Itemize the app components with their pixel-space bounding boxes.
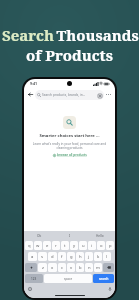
staticText: o: [100, 243, 103, 249]
button[interactable]: x: [48, 263, 57, 272]
button[interactable]: More options: [105, 91, 112, 98]
button[interactable]: a: [28, 252, 37, 261]
staticText: search: [99, 277, 109, 281]
button[interactable]: r: [52, 241, 60, 250]
staticText: e: [46, 243, 49, 249]
button[interactable]: browse all products: [53, 153, 87, 157]
staticText: browse all products: [57, 153, 87, 157]
button[interactable]: search: [93, 274, 114, 283]
staticText: q: [28, 243, 31, 249]
staticText: Search: [0, 25, 56, 45]
button[interactable]: f: [58, 252, 66, 261]
staticText: m: [96, 265, 100, 271]
button[interactable]: Emoji: [27, 286, 32, 291]
staticText: Search products, brands, in…: [42, 93, 97, 97]
button[interactable]: u: [79, 241, 87, 250]
button[interactable]: g: [67, 252, 75, 261]
button[interactable]: e: [43, 241, 51, 250]
button[interactable]: z: [38, 263, 47, 272]
staticText: s: [41, 254, 44, 260]
button[interactable]: d: [48, 252, 57, 261]
button[interactable]: b: [76, 263, 84, 272]
button[interactable]: 123: [25, 274, 43, 283]
staticText: h: [79, 254, 82, 260]
staticText: n: [88, 265, 91, 271]
staticText: g: [70, 254, 73, 260]
staticText: x: [51, 265, 54, 271]
button[interactable]: w: [34, 241, 42, 250]
button[interactable]: l: [103, 252, 111, 261]
staticText: p: [109, 243, 112, 249]
staticText: space: [64, 277, 73, 281]
button[interactable]: I: [55, 231, 85, 240]
staticText: u: [82, 243, 85, 249]
button[interactable]: Search products, brands, in…: [35, 90, 104, 100]
button[interactable]: Voice input: [107, 286, 112, 291]
button[interactable]: v: [67, 263, 75, 272]
staticText: j: [88, 254, 90, 260]
staticText: I: [69, 234, 71, 238]
staticText: d: [51, 254, 54, 260]
staticText: Hello: [96, 234, 104, 238]
button[interactable]: Shift: [25, 263, 37, 272]
staticText: k: [97, 254, 100, 260]
button[interactable]: k: [94, 252, 102, 261]
staticText: Learn what's really in your food, person…: [31, 142, 108, 150]
staticText: Smarter choices start here …: [39, 133, 100, 139]
button[interactable]: q: [25, 241, 33, 250]
staticText: c: [61, 265, 64, 271]
button[interactable]: h: [76, 252, 84, 261]
button[interactable]: Back: [27, 91, 34, 98]
button[interactable]: s: [38, 252, 47, 261]
staticText: i: [91, 243, 93, 249]
staticText: v: [70, 265, 73, 271]
button[interactable]: Backspace: [103, 263, 114, 272]
button[interactable]: c: [58, 263, 66, 272]
staticText: 123: [31, 277, 37, 281]
button[interactable]: n: [85, 263, 93, 272]
staticText: f: [61, 254, 63, 260]
button[interactable]: j: [85, 252, 93, 261]
button[interactable]: space: [44, 274, 92, 283]
button[interactable]: o: [97, 241, 105, 250]
staticText: t: [64, 243, 66, 249]
staticText: of Products: [26, 45, 113, 65]
button[interactable]: i: [88, 241, 96, 250]
staticText: y: [73, 243, 76, 249]
staticText: a: [31, 254, 34, 260]
button[interactable]: m: [94, 263, 102, 272]
staticText: w: [36, 243, 40, 249]
staticText: Ok: [37, 234, 42, 238]
staticText: l: [106, 254, 108, 260]
staticText: b: [79, 265, 82, 271]
button[interactable]: t: [61, 241, 69, 250]
button[interactable]: p: [106, 241, 114, 250]
button[interactable]: Scan barcode: [97, 93, 102, 98]
button[interactable]: Ok: [24, 231, 55, 240]
button[interactable]: Hello: [85, 231, 115, 240]
staticText: r: [55, 243, 57, 249]
staticText: z: [42, 265, 44, 271]
staticText: Thousands: [56, 25, 139, 45]
staticText: 9:41: [30, 81, 38, 86]
button[interactable]: y: [70, 241, 78, 250]
